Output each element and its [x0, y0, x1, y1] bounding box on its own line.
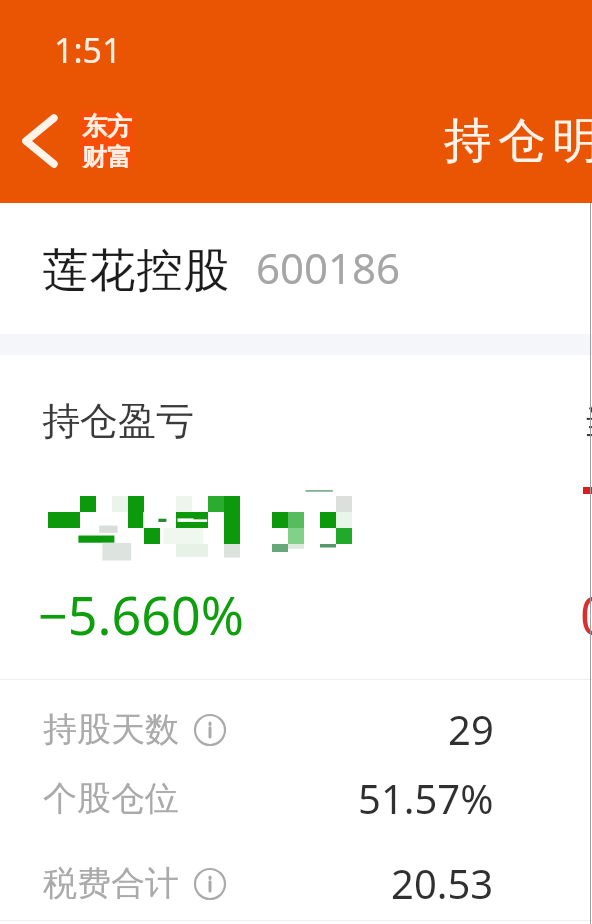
- staticText: 东方: [82, 111, 132, 142]
- staticText: 持股天数: [43, 708, 179, 751]
- staticText: 持仓明: [441, 111, 592, 171]
- staticText: 20.53: [391, 856, 494, 910]
- button[interactable]: 持股天数: [0, 694, 592, 764]
- staticText: 1:51: [54, 27, 122, 73]
- staticText: 持仓盈亏: [42, 397, 194, 445]
- staticText: 税费合计: [43, 862, 179, 905]
- button[interactable]: 莲花控股: [0, 203, 592, 334]
- staticText: 51.57%: [358, 771, 494, 825]
- staticText: 个股仓位: [43, 777, 179, 820]
- button[interactable]: 税费合计: [0, 848, 592, 918]
- button[interactable]: Back: [7, 109, 71, 173]
- staticText: 当日盈亏: [583, 397, 592, 445]
- staticText: 600186: [256, 239, 401, 296]
- staticText: 财富: [82, 142, 132, 168]
- staticText: 0.00%: [580, 579, 592, 650]
- staticText: −5.660%: [38, 579, 244, 650]
- button[interactable]: East Money: [80, 111, 133, 168]
- button[interactable]: 个股仓位: [0, 763, 592, 833]
- staticText: 29: [448, 702, 494, 756]
- staticText: 莲花控股: [42, 242, 230, 300]
